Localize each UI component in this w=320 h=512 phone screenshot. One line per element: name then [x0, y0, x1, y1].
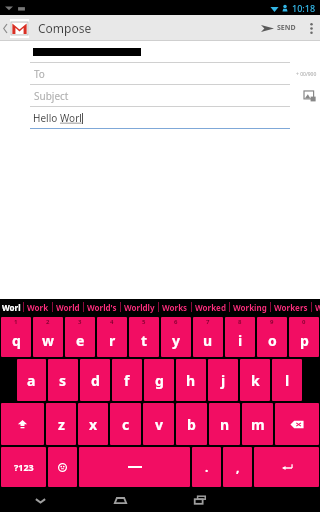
staticText: h — [186, 371, 196, 390]
staticText: i — [238, 331, 243, 350]
staticText: c — [122, 415, 130, 434]
button[interactable]: 1 — [1, 317, 31, 357]
staticText: + 00/900 — [296, 71, 317, 78]
button[interactable]: Attach image — [304, 90, 316, 102]
button[interactable]: k — [240, 359, 270, 401]
button[interactable]: v — [143, 403, 174, 445]
staticText: w — [42, 331, 54, 350]
staticText: 9 — [270, 318, 274, 326]
button[interactable]: To — [0, 63, 320, 85]
button[interactable]: Home — [80, 488, 160, 512]
button[interactable]: Worked — [192, 302, 229, 313]
button[interactable]: 2 — [33, 317, 63, 357]
staticText: World's — [87, 302, 117, 313]
staticText: p — [300, 331, 309, 350]
button[interactable]: b — [176, 403, 207, 445]
staticText: j — [221, 371, 226, 390]
button[interactable]: 6 — [161, 317, 191, 357]
staticText: 6 — [174, 318, 178, 326]
staticText: World — [56, 302, 80, 313]
staticText: k — [251, 371, 260, 390]
staticText: v — [155, 415, 163, 434]
staticText: Works — [162, 302, 188, 313]
button[interactable]: SEND — [255, 15, 302, 41]
staticText: Worl — [2, 302, 21, 313]
button[interactable]: 5 — [129, 317, 159, 357]
staticText: q — [12, 331, 21, 350]
button[interactable]: 0 — [289, 317, 319, 357]
button[interactable]: s — [48, 359, 78, 401]
button[interactable]: . — [192, 447, 221, 487]
staticText: o — [268, 331, 277, 350]
button[interactable]: m — [242, 403, 273, 445]
staticText: d — [91, 371, 100, 390]
staticText: m — [251, 415, 265, 434]
staticText: 2 — [46, 318, 50, 326]
button[interactable]: h — [176, 359, 206, 401]
staticText: Hello — [33, 111, 60, 125]
button[interactable]: 9 — [257, 317, 287, 357]
button[interactable]: z — [46, 403, 76, 445]
button[interactable]: a — [17, 359, 46, 401]
button[interactable]: d — [80, 359, 110, 401]
staticText: s — [59, 371, 67, 390]
button[interactable]: x — [78, 403, 108, 445]
button[interactable]: World — [53, 302, 83, 313]
staticText: g — [155, 371, 164, 390]
button[interactable]: World's — [84, 302, 120, 313]
button[interactable]: f — [112, 359, 142, 401]
staticText: n — [220, 415, 230, 434]
staticText: r — [109, 331, 116, 350]
button[interactable]: Backspace — [275, 403, 319, 445]
staticText: . — [205, 459, 209, 475]
button[interactable]: Emoji — [48, 447, 77, 487]
button[interactable]: Subject — [0, 85, 320, 107]
button[interactable]: j — [208, 359, 238, 401]
button[interactable]: c — [110, 403, 141, 445]
button[interactable]: ?123 — [1, 447, 46, 487]
button[interactable]: g — [144, 359, 174, 401]
button[interactable]: Worldly — [121, 302, 158, 313]
staticText: b — [187, 415, 196, 434]
button[interactable]: , — [223, 447, 252, 487]
staticText: u — [203, 331, 213, 350]
button[interactable]: Shift — [1, 403, 44, 445]
staticText: 5 — [142, 318, 146, 326]
button[interactable]: 3 — [65, 317, 95, 357]
staticText: 4 — [110, 318, 114, 326]
staticText: Workers — [274, 302, 308, 313]
button[interactable]: More options — [302, 15, 320, 41]
button[interactable]: 7 — [193, 317, 223, 357]
button[interactable]: 8 — [225, 317, 255, 357]
staticText: Worked — [195, 302, 226, 313]
button[interactable]: 4 — [97, 317, 127, 357]
staticText: l — [285, 371, 290, 390]
button[interactable]: Work — [24, 302, 52, 313]
button[interactable]: Navigate up — [0, 15, 32, 41]
staticText: Work — [27, 302, 49, 313]
staticText: a — [27, 371, 36, 390]
staticText: f — [124, 371, 130, 390]
button[interactable]: Worlds — [312, 302, 320, 313]
staticText: Working — [233, 302, 267, 313]
button[interactable]: l — [272, 359, 302, 401]
staticText: Compose — [38, 20, 92, 36]
button[interactable]: Worl — [0, 302, 23, 313]
staticText: x — [89, 415, 98, 434]
button[interactable]: Recent apps — [160, 488, 240, 512]
button[interactable]: Hello — [0, 107, 320, 129]
button[interactable]: Workers — [271, 302, 311, 313]
button[interactable]: Enter — [254, 447, 319, 487]
staticText: Worldly — [124, 302, 155, 313]
staticText: Subject — [34, 89, 69, 103]
button[interactable]: n — [209, 403, 240, 445]
staticText: z — [58, 415, 65, 434]
button[interactable]: Works — [159, 302, 191, 313]
button[interactable]: Hide keyboard — [0, 488, 80, 512]
button[interactable]: Space — [79, 447, 190, 487]
button[interactable]: Working — [230, 302, 270, 313]
staticText: Worl — [60, 111, 82, 125]
staticText: 7 — [206, 318, 210, 326]
staticText: 1 — [14, 318, 18, 326]
staticText: y — [172, 331, 180, 350]
